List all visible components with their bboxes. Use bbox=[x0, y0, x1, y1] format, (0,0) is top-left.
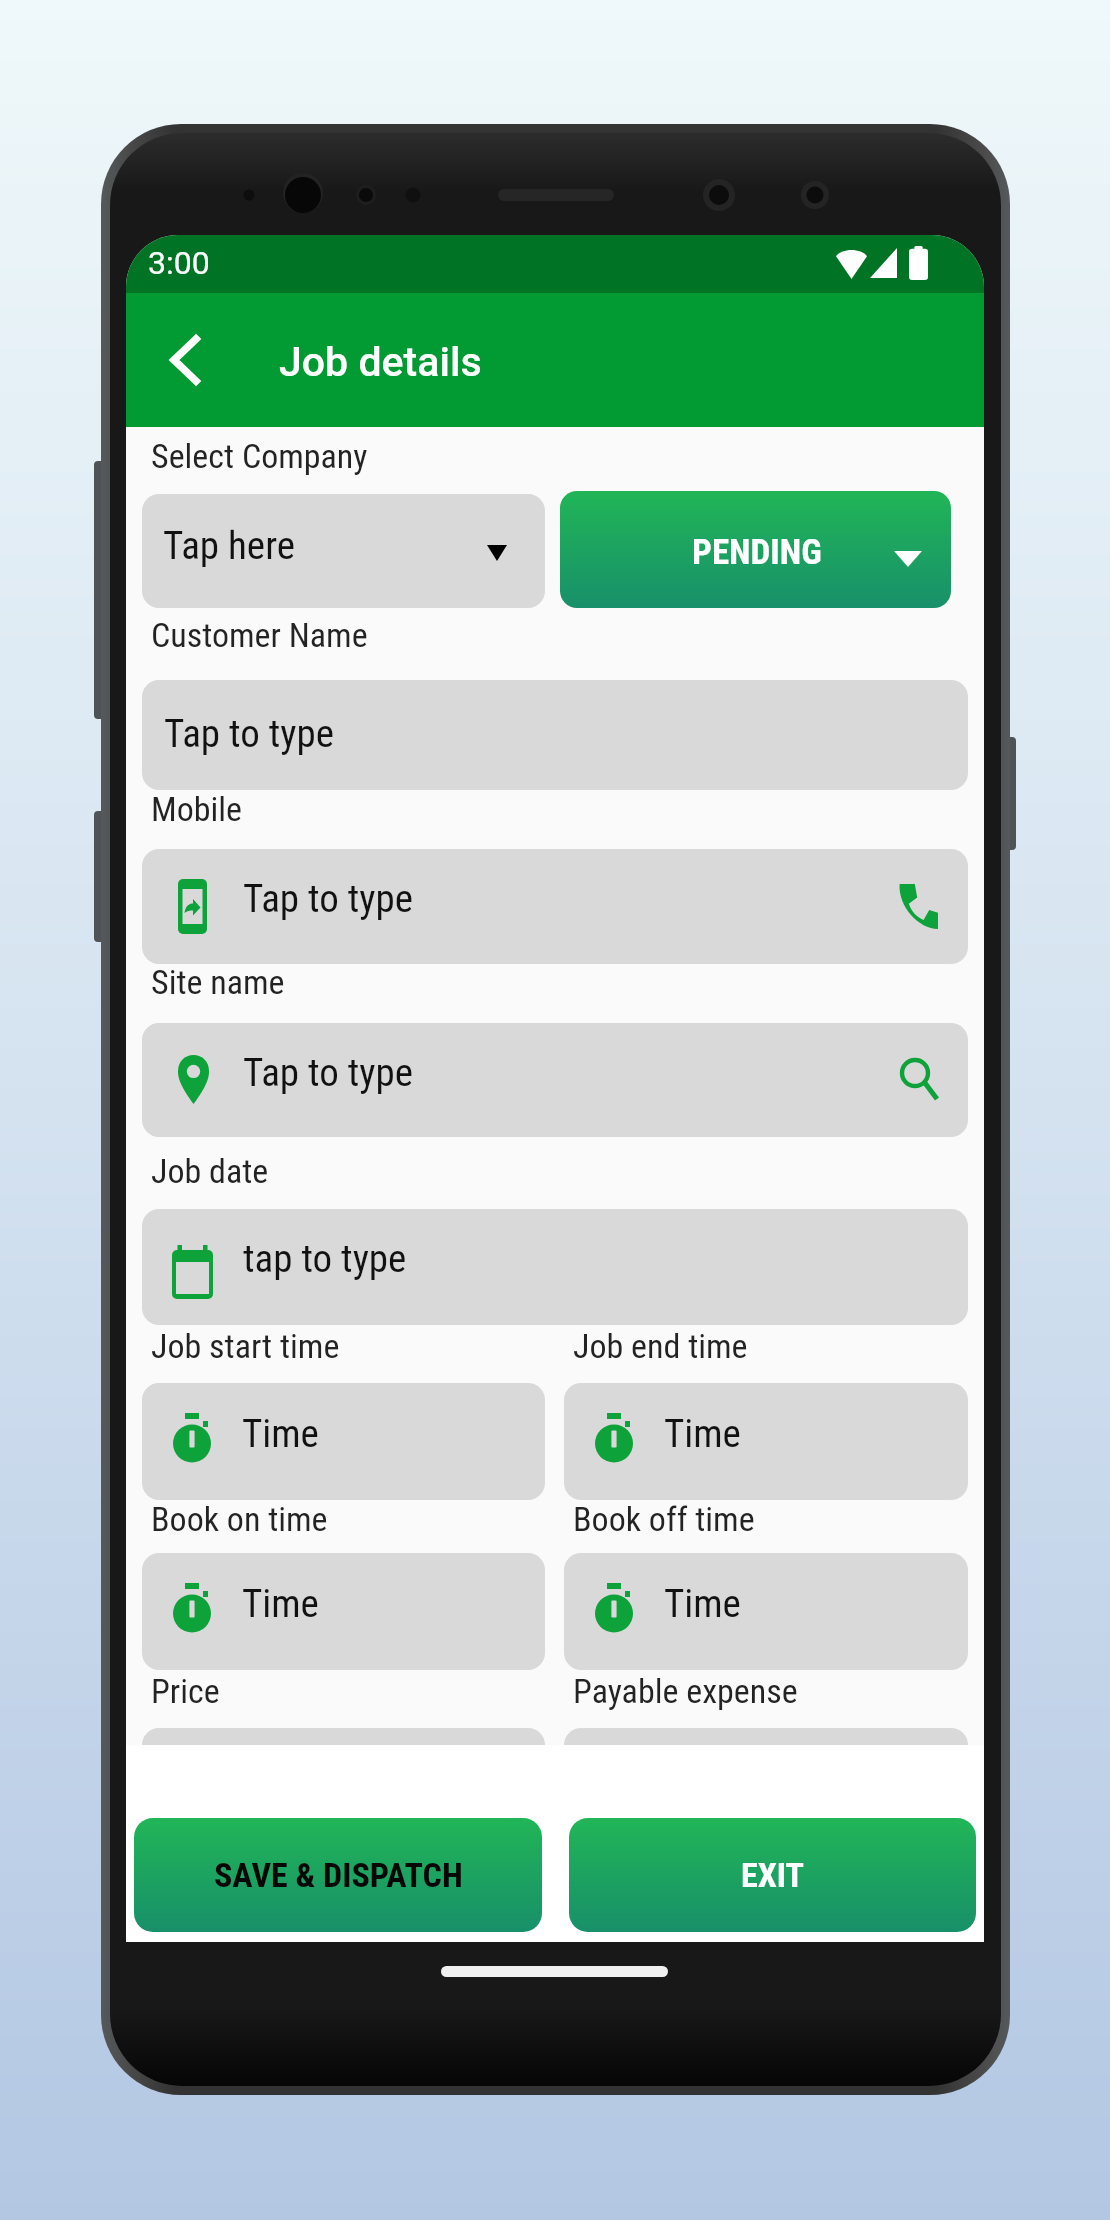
staticText: Select Company bbox=[151, 436, 368, 476]
staticText: Job details bbox=[279, 338, 482, 386]
staticText: Time bbox=[664, 1581, 741, 1627]
button[interactable]: Time bbox=[142, 1383, 545, 1500]
staticText: tap to type bbox=[243, 1236, 407, 1282]
staticText: Time bbox=[664, 1411, 741, 1457]
staticText: Time bbox=[242, 1581, 319, 1627]
button[interactable] bbox=[142, 1728, 545, 1843]
staticText: Job date bbox=[151, 1151, 269, 1191]
staticText: 3:00 bbox=[148, 244, 210, 282]
staticText: Tap to type bbox=[243, 1050, 413, 1096]
staticText: Book off time bbox=[573, 1499, 755, 1539]
button[interactable]: SAVE & DISPATCH bbox=[134, 1818, 542, 1932]
button[interactable]: EXIT bbox=[569, 1818, 976, 1932]
staticText: Time bbox=[242, 1411, 319, 1457]
staticText: Job end time bbox=[573, 1326, 748, 1366]
button[interactable]: tap to type bbox=[142, 1209, 968, 1325]
staticText: Tap to type bbox=[243, 876, 413, 922]
staticText: EXIT bbox=[741, 1855, 804, 1895]
button[interactable] bbox=[564, 1728, 968, 1843]
staticText: Tap here bbox=[163, 523, 295, 569]
staticText: Payable expense bbox=[573, 1671, 798, 1711]
staticText: Book on time bbox=[151, 1499, 328, 1539]
button[interactable]: Tap here bbox=[142, 494, 545, 608]
staticText: PENDING bbox=[692, 532, 822, 573]
button[interactable]: Back bbox=[148, 318, 232, 402]
staticText: Mobile bbox=[151, 789, 243, 829]
button[interactable]: Time bbox=[142, 1553, 545, 1670]
staticText: Tap to type bbox=[164, 711, 334, 757]
staticText: Customer Name bbox=[151, 615, 368, 655]
button[interactable]: Tap to type bbox=[142, 680, 968, 790]
staticText: Site name bbox=[151, 962, 285, 1002]
button[interactable]: Time bbox=[564, 1383, 968, 1500]
button[interactable]: Tap to type bbox=[142, 1023, 968, 1137]
button[interactable]: Tap to type bbox=[142, 849, 968, 964]
staticText: Job start time bbox=[151, 1326, 340, 1366]
staticText: SAVE & DISPATCH bbox=[214, 1855, 463, 1895]
button[interactable]: Time bbox=[564, 1553, 968, 1670]
button[interactable]: PENDING bbox=[560, 491, 951, 608]
staticText: Price bbox=[151, 1671, 220, 1711]
